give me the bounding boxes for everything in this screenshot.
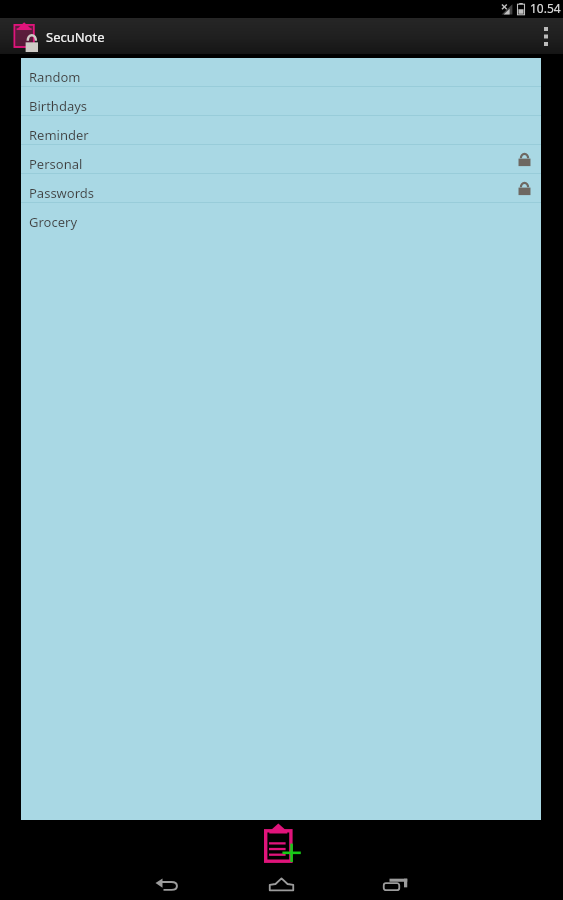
staticText: Grocery xyxy=(29,213,78,231)
button[interactable]: Passwords xyxy=(21,174,541,203)
staticText: Passwords xyxy=(29,184,95,202)
button[interactable]: More options xyxy=(529,18,563,54)
button[interactable]: Random xyxy=(21,58,541,87)
button[interactable]: Reminder xyxy=(21,116,541,145)
staticText: Reminder xyxy=(29,126,89,144)
staticText: Birthdays xyxy=(29,97,88,115)
staticText: Personal xyxy=(29,155,83,173)
staticText: SecuNote xyxy=(46,28,105,46)
staticText: 10.54 xyxy=(530,0,561,16)
button[interactable]: Recent apps xyxy=(367,866,424,900)
button[interactable]: Grocery xyxy=(21,203,541,232)
button[interactable]: Personal xyxy=(21,145,541,174)
staticText: Random xyxy=(29,68,81,86)
button[interactable]: Back xyxy=(139,866,196,900)
button[interactable]: Add note xyxy=(263,823,303,865)
button[interactable]: Birthdays xyxy=(21,87,541,116)
button[interactable]: Home xyxy=(253,866,310,900)
